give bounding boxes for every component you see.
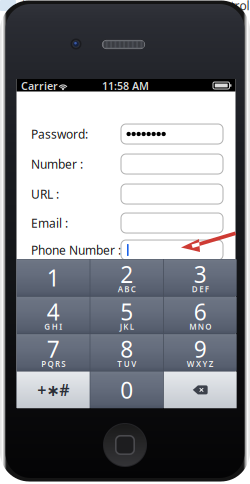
button[interactable] <box>0 0 250 484</box>
staticText: O <box>205 321 211 332</box>
staticText: 2 <box>120 259 133 289</box>
staticText: H <box>52 321 58 332</box>
button[interactable]: 9 <box>0 0 250 484</box>
staticText: Number : <box>31 156 83 172</box>
staticText: Carrier <box>21 79 58 93</box>
staticText: E <box>199 284 203 294</box>
button[interactable]: 7 <box>0 0 250 484</box>
staticText: 11:58 AM <box>102 79 149 93</box>
button[interactable]: 3 <box>0 0 250 484</box>
staticText: in <box>22 0 32 13</box>
staticText: S <box>61 359 65 369</box>
staticText: B <box>124 284 129 294</box>
staticText: K <box>123 321 128 332</box>
staticText: W <box>187 359 195 369</box>
staticText: 6 <box>194 296 207 327</box>
staticText: N <box>198 321 204 332</box>
staticText: J <box>120 321 122 332</box>
staticText: M <box>189 321 196 332</box>
staticText: X <box>196 359 201 369</box>
staticText: 9 <box>194 334 207 364</box>
staticText: trol <box>230 0 249 13</box>
staticText: 7 <box>47 334 60 364</box>
staticText: 4 <box>47 296 60 327</box>
button[interactable] <box>0 0 250 484</box>
button[interactable] <box>0 0 250 484</box>
staticText: U <box>124 359 130 369</box>
button[interactable]: 0 <box>0 0 250 484</box>
button[interactable]: 1 <box>0 0 250 484</box>
staticText: Phone Number : <box>31 242 121 258</box>
button[interactable]: Delete <box>0 0 250 484</box>
button[interactable]: 8 <box>0 0 250 484</box>
button[interactable]: 6 <box>0 0 250 484</box>
staticText: Email : <box>31 215 68 231</box>
staticText: 8 <box>120 334 133 364</box>
staticText: L <box>130 321 134 332</box>
staticText: A <box>118 284 123 294</box>
button[interactable] <box>0 0 250 484</box>
staticText: C <box>131 284 136 294</box>
staticText: 3 <box>194 259 207 289</box>
button[interactable]: +∗# <box>0 0 250 484</box>
staticText: P <box>41 359 46 369</box>
staticText: Q <box>47 359 53 369</box>
staticText: +∗# <box>37 379 69 400</box>
button[interactable]: 4 <box>0 0 250 484</box>
staticText: D <box>192 284 198 294</box>
staticText: Y <box>202 359 207 369</box>
staticText: URL : <box>31 186 59 202</box>
button[interactable] <box>0 0 250 484</box>
staticText: T <box>117 359 122 369</box>
staticText: 5 <box>120 296 133 327</box>
button[interactable]: 2 <box>0 0 250 484</box>
staticText: G <box>44 321 50 332</box>
staticText: Password: <box>31 126 88 142</box>
staticText: I <box>59 321 62 332</box>
staticText: R <box>55 359 60 369</box>
button[interactable]: 5 <box>0 0 250 484</box>
staticText: 1 <box>47 263 60 293</box>
staticText: F <box>205 284 209 294</box>
staticText: Z <box>209 359 214 369</box>
staticText: V <box>131 359 136 369</box>
staticText: 0 <box>120 375 133 405</box>
